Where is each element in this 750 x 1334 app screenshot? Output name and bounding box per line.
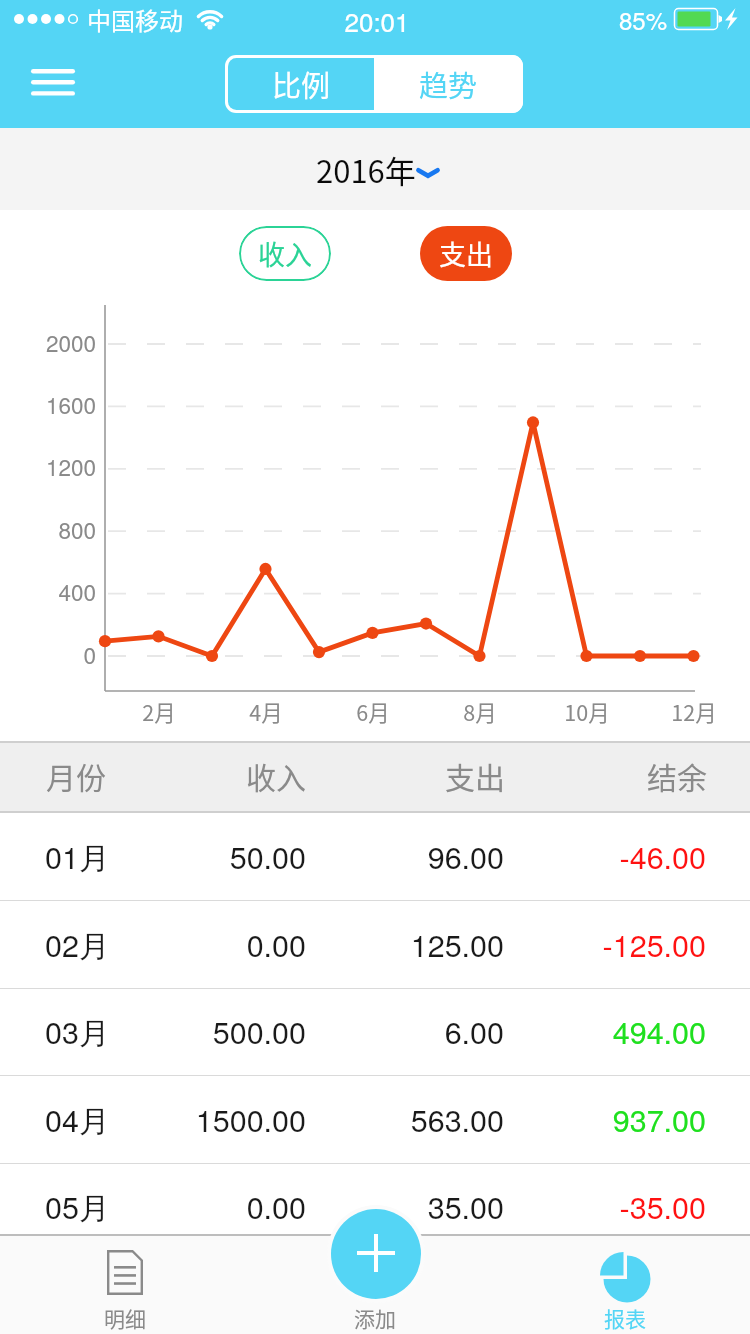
staticText: 中国移动 — [87, 2, 183, 37]
staticText: 月份 — [46, 754, 106, 797]
button[interactable]: 收入 — [239, 226, 331, 281]
staticText: 结余 — [0, 754, 707, 797]
staticText: 1600 — [10, 388, 96, 420]
button[interactable]: 明细 — [0, 1235, 250, 1334]
staticText: 563.00 — [0, 1097, 504, 1141]
staticText: 400 — [10, 575, 96, 607]
button[interactable]: 03月 — [0, 988, 750, 1076]
staticText: 125.00 — [0, 922, 504, 966]
staticText: 1500.00 — [0, 1097, 306, 1141]
staticText: 03月 — [45, 1009, 110, 1053]
button[interactable]: Add — [331, 1209, 421, 1299]
staticText: 支出 — [439, 234, 493, 273]
button[interactable]: Menu — [10, 53, 98, 115]
staticText: 4月 — [221, 696, 311, 727]
staticText: 8月 — [435, 696, 525, 727]
staticText: 趋势 — [419, 63, 478, 105]
staticText: 1200 — [10, 450, 96, 482]
staticText: 明细 — [0, 1303, 250, 1333]
button[interactable]: 添加 — [250, 1235, 500, 1334]
staticText: -46.00 — [0, 834, 706, 878]
button[interactable]: 01月 — [0, 813, 750, 901]
staticText: 20:01 — [344, 2, 410, 39]
staticText: 494.00 — [0, 1009, 706, 1053]
button[interactable]: 05月 — [0, 1163, 750, 1251]
button[interactable]: 02月 — [0, 901, 750, 989]
staticText: -125.00 — [0, 922, 706, 966]
staticText: 85% — [619, 2, 668, 36]
staticText: 添加 — [250, 1303, 500, 1333]
button[interactable]: 支出 — [420, 226, 512, 281]
staticText: 04月 — [45, 1097, 110, 1141]
button[interactable]: 2016年 — [306, 139, 450, 200]
staticText: 收入 — [258, 234, 312, 273]
button[interactable]: 趋势 — [374, 55, 523, 113]
staticText: 937.00 — [0, 1097, 706, 1141]
staticText: 35.00 — [0, 1184, 504, 1228]
staticText: 比例 — [272, 63, 331, 105]
staticText: 50.00 — [0, 834, 306, 878]
staticText: 2月 — [114, 696, 204, 727]
staticText: 500.00 — [0, 1009, 306, 1053]
staticText: 96.00 — [0, 834, 504, 878]
staticText: 800 — [10, 513, 96, 545]
staticText: 10月 — [542, 696, 632, 727]
staticText: 02月 — [45, 922, 110, 966]
staticText: 01月 — [45, 834, 110, 878]
staticText: 6月 — [328, 696, 418, 727]
staticText: 0 — [10, 638, 96, 670]
button[interactable]: 04月 — [0, 1076, 750, 1164]
staticText: 0.00 — [0, 1184, 306, 1228]
staticText: 2000 — [10, 326, 96, 358]
staticText: 收入 — [0, 754, 306, 797]
staticText: 05月 — [45, 1184, 110, 1228]
staticText: 6.00 — [0, 1009, 504, 1053]
staticText: 0.00 — [0, 922, 306, 966]
button[interactable]: 比例 — [228, 58, 374, 110]
staticText: 支出 — [0, 754, 505, 797]
staticText: -35.00 — [0, 1184, 706, 1228]
staticText: 报表 — [500, 1303, 750, 1333]
button[interactable]: 报表 — [500, 1235, 750, 1334]
staticText: 12月 — [649, 696, 739, 727]
staticText: 2016年 — [316, 147, 416, 192]
